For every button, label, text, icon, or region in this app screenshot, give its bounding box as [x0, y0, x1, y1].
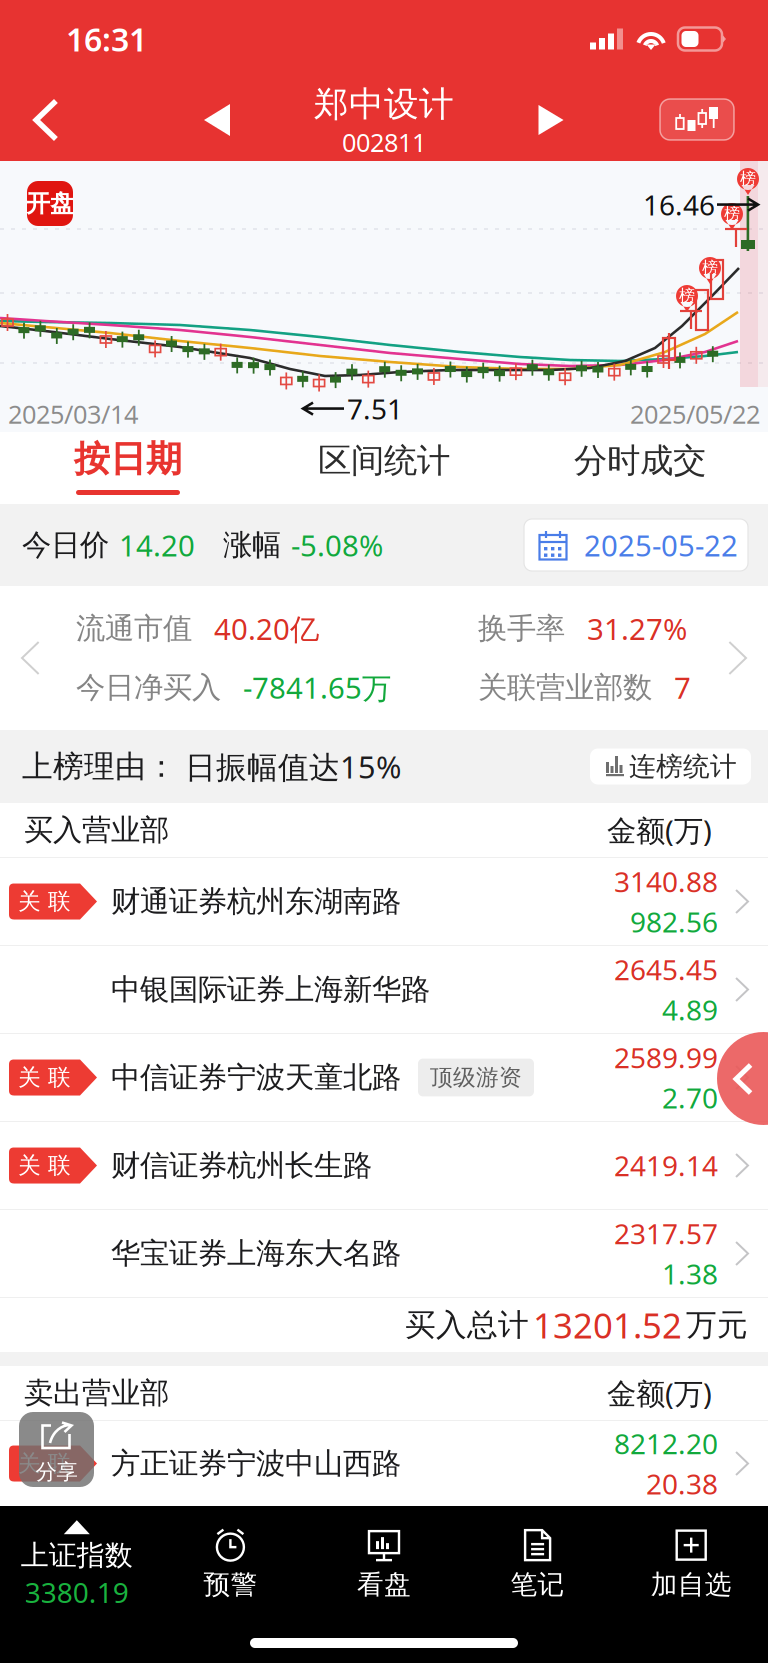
- staticText: 40.20亿: [214, 609, 319, 648]
- button[interactable]: 预警: [154, 1506, 307, 1622]
- staticText: 2025/05/22: [630, 397, 760, 431]
- staticText: 区间统计: [318, 440, 450, 481]
- staticText: 买入总计: [405, 1306, 529, 1344]
- staticText: 今日净买入: [76, 669, 221, 705]
- button[interactable]: 中银国际证券上海新华路: [0, 946, 768, 1033]
- staticText: 关 联: [18, 1450, 71, 1477]
- staticText: 7.51: [347, 390, 403, 427]
- button[interactable]: 关 联: [0, 1034, 768, 1121]
- staticText: 华宝证券上海东大名路: [111, 1235, 401, 1271]
- staticText: 上证指数: [21, 1538, 133, 1573]
- staticText: 3380.19: [25, 1574, 129, 1611]
- staticText: 换手率: [478, 610, 565, 646]
- button[interactable]: 华宝证券上海东大名路: [0, 1210, 768, 1297]
- staticText: 关 联: [18, 1064, 71, 1091]
- button[interactable]: 按日期: [0, 432, 256, 504]
- staticText: 方正证券宁波中山西路: [111, 1445, 401, 1481]
- staticText: 14.20: [119, 525, 195, 564]
- button[interactable]: 区间统计: [256, 432, 512, 504]
- staticText: 002811: [342, 125, 426, 159]
- button[interactable]: 分时成交: [512, 432, 768, 504]
- button[interactable]: Share: [19, 1412, 94, 1487]
- button[interactable]: 关 联: [0, 1122, 768, 1209]
- button[interactable]: Back: [10, 79, 82, 161]
- staticText: 顶级游资: [430, 1064, 522, 1091]
- button[interactable]: 2025-05-22: [524, 519, 768, 571]
- staticText: 31.27%: [587, 609, 687, 648]
- staticText: 笔记: [511, 1568, 565, 1601]
- staticText: 16:31: [66, 18, 147, 60]
- staticText: 今日价: [22, 527, 109, 563]
- staticText: 4.89: [662, 991, 718, 1028]
- staticText: 金额(万): [607, 1373, 712, 1412]
- button[interactable]: 关 联: [0, 1421, 768, 1506]
- staticText: 13201.52: [533, 1302, 682, 1348]
- staticText: 1.38: [662, 1255, 718, 1292]
- button[interactable]: 上证指数: [0, 1506, 154, 1622]
- staticText: -7841.65万: [243, 668, 391, 707]
- staticText: 8212.20: [614, 1425, 718, 1462]
- staticText: 关联营业部数: [478, 669, 652, 705]
- button[interactable]: 加自选: [614, 1506, 768, 1622]
- staticText: 预警: [203, 1568, 257, 1601]
- staticText: 加自选: [651, 1568, 732, 1601]
- staticText: 看盘: [357, 1568, 411, 1601]
- staticText: 上榜理由：: [22, 748, 177, 785]
- button[interactable]: 看盘: [307, 1506, 461, 1622]
- staticText: 榜: [679, 286, 695, 305]
- staticText: 开盘: [26, 189, 74, 218]
- staticText: 16.46: [643, 186, 715, 223]
- staticText: 2.70: [662, 1079, 718, 1116]
- staticText: 日振幅值达15%: [185, 746, 401, 787]
- button[interactable]: Chart type: [660, 99, 734, 140]
- button[interactable]: Collapse panel: [717, 1032, 768, 1125]
- button[interactable]: Previous stock: [187, 79, 247, 161]
- staticText: 7: [674, 668, 691, 707]
- staticText: 分享: [35, 1459, 77, 1485]
- staticText: 2589.99: [614, 1039, 718, 1076]
- staticText: 按日期: [74, 437, 182, 481]
- staticText: 分时成交: [574, 440, 706, 481]
- staticText: 财通证券杭州东湖南路: [111, 883, 401, 919]
- button[interactable]: 笔记: [461, 1506, 614, 1622]
- staticText: 连榜统计: [629, 750, 737, 783]
- button[interactable]: 关 联: [0, 858, 768, 945]
- staticText: 郑中设计: [314, 83, 454, 125]
- staticText: 关 联: [18, 888, 71, 915]
- staticText: 卖出营业部: [24, 1375, 169, 1411]
- staticText: 982.56: [630, 903, 718, 940]
- staticText: 2025-05-22: [584, 525, 738, 564]
- staticText: 中信证券宁波天童北路: [111, 1059, 401, 1095]
- staticText: 2645.45: [614, 951, 718, 988]
- staticText: 榜: [740, 169, 756, 188]
- staticText: 3140.88: [614, 863, 718, 900]
- staticText: 金额(万): [607, 810, 712, 849]
- staticText: -5.08%: [291, 525, 383, 564]
- staticText: 2317.57: [614, 1215, 718, 1252]
- staticText: 万元: [686, 1306, 748, 1344]
- staticText: 中银国际证券上海新华路: [111, 971, 430, 1007]
- staticText: 买入营业部: [24, 812, 169, 848]
- button[interactable]: 连榜统计: [590, 748, 768, 784]
- button[interactable]: Next stock: [521, 79, 581, 161]
- staticText: 2025/03/14: [8, 397, 138, 431]
- staticText: 关 联: [18, 1152, 71, 1179]
- staticText: 榜: [702, 258, 718, 277]
- staticText: 榜: [724, 204, 740, 223]
- staticText: 流通市值: [76, 610, 192, 646]
- staticText: 20.38: [646, 1465, 718, 1502]
- staticText: 涨幅: [223, 527, 281, 563]
- staticText: 财信证券杭州长生路: [111, 1147, 372, 1183]
- staticText: 2419.14: [614, 1147, 718, 1184]
